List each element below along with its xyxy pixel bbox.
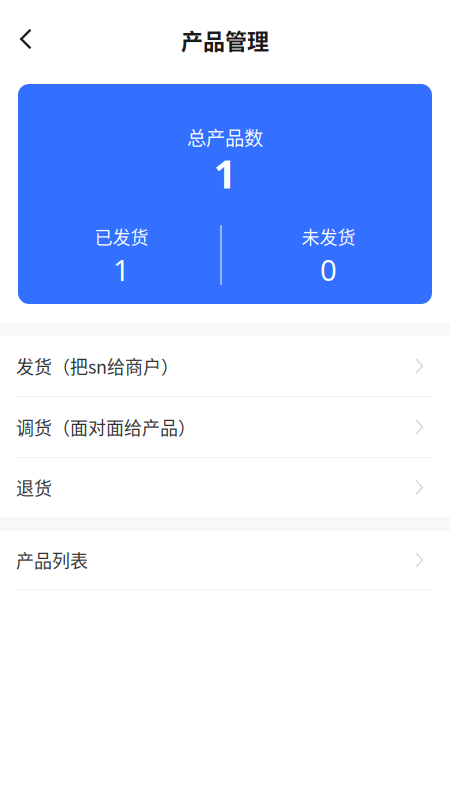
staticText: 产品管理 xyxy=(181,24,269,56)
staticText: 1 xyxy=(213,146,236,199)
staticText: 发货（把sn给商户） xyxy=(16,353,179,379)
staticText: 总产品数 xyxy=(187,123,263,151)
staticText: 0 xyxy=(320,250,337,289)
button[interactable]: Back xyxy=(0,18,32,61)
button[interactable]: 调货（面对面给产品） xyxy=(0,397,450,457)
staticText: 退货 xyxy=(16,474,52,501)
staticText: 1 xyxy=(113,250,130,289)
button[interactable]: 发货（把sn给商户） xyxy=(0,336,450,396)
staticText: 调货（面对面给产品） xyxy=(16,414,196,440)
staticText: 未发货 xyxy=(301,223,355,250)
staticText: 已发货 xyxy=(94,223,148,250)
button[interactable]: 产品列表 xyxy=(0,531,450,589)
button[interactable]: 退货 xyxy=(0,458,450,517)
staticText: 产品列表 xyxy=(16,547,88,573)
